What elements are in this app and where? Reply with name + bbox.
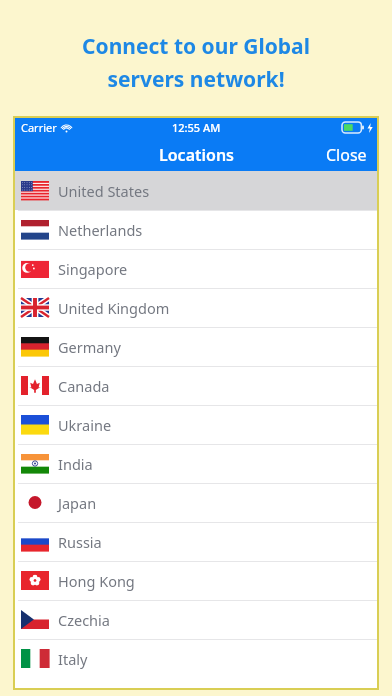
button[interactable]: Czechia <box>13 600 379 639</box>
staticText: Ukraine <box>58 415 112 435</box>
staticText: Close <box>326 144 367 165</box>
button[interactable]: Hong Kong <box>13 561 379 600</box>
staticText: United Kingdom <box>58 298 170 318</box>
staticText: Locations <box>159 144 234 166</box>
button[interactable]: Singapore <box>13 249 379 288</box>
staticText: Connect to our Global <box>82 32 310 61</box>
staticText: Russia <box>58 532 102 552</box>
staticText: Germany <box>58 337 121 357</box>
button[interactable]: Italy <box>13 639 379 678</box>
staticText: India <box>58 454 93 474</box>
staticText: 12:55 AM <box>172 120 221 135</box>
staticText: Italy <box>58 649 88 669</box>
staticText: Czechia <box>58 610 110 630</box>
staticText: United States <box>58 181 150 201</box>
button[interactable]: Close <box>314 138 379 171</box>
button[interactable]: United Kingdom <box>13 288 379 327</box>
staticText: Netherlands <box>58 220 143 240</box>
button[interactable]: India <box>13 444 379 483</box>
button[interactable]: Japan <box>13 483 379 522</box>
button[interactable]: Germany <box>13 327 379 366</box>
button[interactable]: United States <box>13 171 379 210</box>
button[interactable]: Netherlands <box>13 210 379 249</box>
staticText: Singapore <box>58 259 128 279</box>
staticText: Carrier <box>21 120 57 135</box>
button[interactable]: Russia <box>13 522 379 561</box>
button[interactable]: Ukraine <box>13 405 379 444</box>
staticText: Canada <box>58 376 110 396</box>
button[interactable]: Canada <box>13 366 379 405</box>
staticText: servers network! <box>107 65 285 94</box>
staticText: Japan <box>58 493 97 513</box>
staticText: Hong Kong <box>58 571 135 591</box>
